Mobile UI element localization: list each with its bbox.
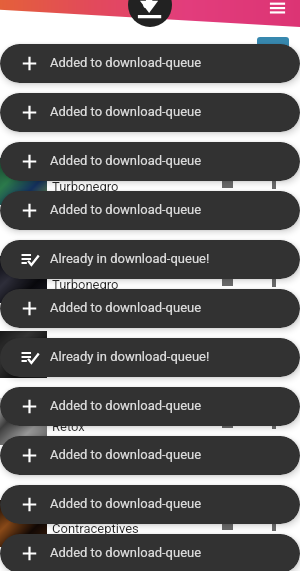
staticText: Added to download-queue <box>50 545 202 560</box>
staticText: Contraceptives <box>52 521 217 536</box>
staticText: 14 Tracks • Album <box>52 194 141 207</box>
staticText: 12 Tracks • Album <box>52 434 141 447</box>
staticText: Turbonegro <box>52 179 217 194</box>
button[interactable]: Already in download-queue! <box>0 338 300 377</box>
button[interactable]: Added to download-queue <box>0 142 300 181</box>
staticText: Added to download-queue <box>50 104 202 119</box>
button[interactable]: Menu <box>268 0 287 17</box>
button[interactable]: Turbonegro <box>0 255 300 304</box>
button[interactable]: Added to download-queue <box>0 44 300 83</box>
button[interactable]: Retox <box>0 397 300 446</box>
button[interactable]: Apocalypse Dudes <box>0 330 300 379</box>
button[interactable]: Added to download-queue <box>0 289 300 328</box>
staticText: Added to download-queue <box>50 202 202 217</box>
button[interactable]: Added to download-queue <box>0 191 300 230</box>
button[interactable]: Added to download-queue <box>0 436 300 475</box>
staticText: 13 Tracks • Album <box>52 367 141 380</box>
staticText: Turbonegro <box>52 277 217 292</box>
staticText: 11 Tracks • Album <box>52 292 141 305</box>
button[interactable]: Added to download-queue <box>0 485 300 524</box>
button[interactable]: Added to download-queue <box>0 93 300 132</box>
staticText: Added to download-queue <box>50 153 202 168</box>
button[interactable]: Contraceptives <box>0 499 300 548</box>
staticText: Retox <box>52 419 217 434</box>
button[interactable]: Turbonegro <box>0 157 300 206</box>
staticText: Already in download-queue! <box>50 349 210 364</box>
button[interactable]: Added to download-queue <box>0 387 300 426</box>
staticText: Already in download-queue! <box>50 251 210 266</box>
staticText: Added to download-queue <box>50 300 202 315</box>
button[interactable] <box>257 37 289 47</box>
button[interactable]: Download <box>128 0 172 27</box>
staticText: Added to download-queue <box>50 447 202 462</box>
staticText: 10 Tracks • Album <box>52 536 141 549</box>
button[interactable]: Added to download-queue <box>0 534 300 571</box>
staticText: Apocalypse Dudes <box>52 352 217 367</box>
staticText: Added to download-queue <box>50 496 202 511</box>
button[interactable]: Already in download-queue! <box>0 240 300 279</box>
staticText: Added to download-queue <box>50 398 202 413</box>
staticText: Added to download-queue <box>50 55 202 70</box>
